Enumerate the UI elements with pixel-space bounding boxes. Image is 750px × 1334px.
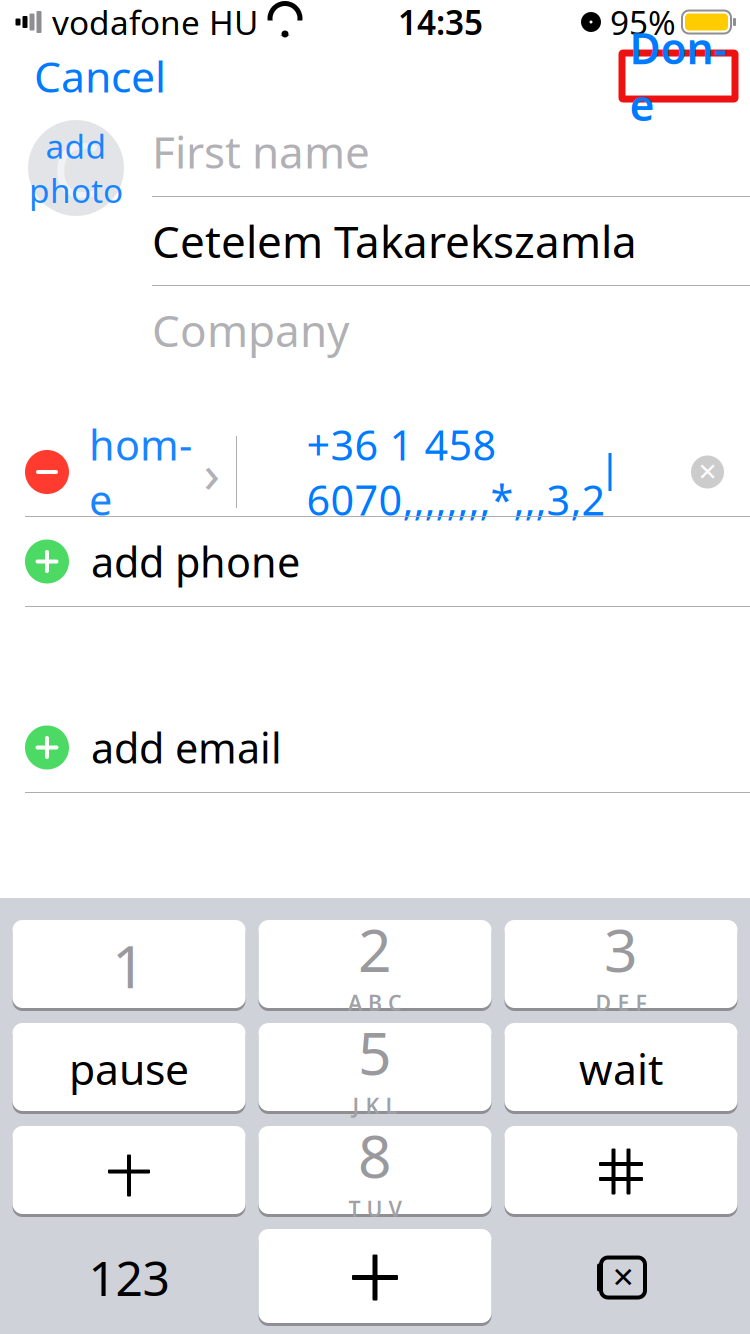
button[interactable]: Delete [504,1232,737,1323]
staticText: Done [629,19,727,133]
staticText: Cancel [34,48,166,104]
button[interactable]: Pound [504,1126,737,1217]
staticText: › [203,437,220,507]
button[interactable]: Cetelem Takarekszamla [152,197,750,285]
staticText: photo [29,168,123,212]
button[interactable]: 3 [504,920,737,1011]
button[interactable]: add phone [0,517,750,606]
staticText: +36 1 458 6070,,,,,,,,*,,,3,2 [306,417,605,527]
staticText: T U V [348,1194,401,1223]
button[interactable]: Company [152,286,750,374]
staticText: pause [69,1040,189,1097]
staticText: 14:35 [398,0,483,44]
staticText: Company [152,301,349,359]
button[interactable]: Done [622,53,735,99]
staticText: add email [91,720,282,775]
staticText: 2 [358,910,392,988]
staticText: Cetelem Takarekszamla [152,212,637,270]
button[interactable]: 5 [258,1023,491,1114]
button[interactable]: 1 [12,920,245,1011]
button[interactable]: Delete phone [0,450,89,494]
staticText: A B C [348,988,402,1017]
button[interactable]: +36 1 458 6070,,,,,,,,*,,,3,2 [237,428,681,516]
staticText: 95% [610,0,676,44]
button[interactable]: add email [0,703,750,792]
button[interactable]: 123 [12,1232,245,1323]
button[interactable]: 8 [258,1126,491,1217]
staticText: 1 [112,926,146,1004]
staticText: ✕ [611,1262,634,1293]
button[interactable]: pause [12,1023,245,1114]
button[interactable]: Star [12,1126,245,1217]
button[interactable]: wait [504,1023,737,1114]
staticText: add phone [91,534,300,589]
button[interactable]: Cancel [28,40,172,112]
staticText: D E F [595,988,646,1017]
staticText: C [52,118,99,218]
staticText: 123 [88,1246,169,1309]
staticText: 8 [358,1116,392,1194]
staticText: 3 [604,910,638,988]
button[interactable]: home [89,428,222,516]
staticText: First name [152,122,370,181]
staticText: ✕ [697,458,717,486]
staticText: 5 [358,1013,392,1091]
button[interactable]: Add photo [28,120,124,216]
button[interactable]: Clear text [691,455,724,488]
staticText: wait [579,1040,663,1097]
button[interactable]: 2 [258,920,491,1011]
staticText: add [45,124,106,168]
button[interactable]: Plus [258,1229,491,1326]
staticText: home [89,417,192,527]
staticText: J K L [352,1091,397,1120]
staticText: vodafone HU [52,0,258,44]
button[interactable]: First name [152,107,750,196]
